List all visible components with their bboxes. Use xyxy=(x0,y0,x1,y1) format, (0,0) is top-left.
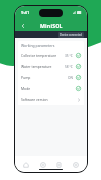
staticText: 35 °C xyxy=(65,54,73,58)
button[interactable]: Software version xyxy=(18,94,84,105)
staticText: Collector temperature xyxy=(21,53,65,58)
button[interactable]: Collector temperature xyxy=(18,50,84,61)
button[interactable]: Statistics xyxy=(37,159,49,171)
button[interactable]: Back xyxy=(18,21,27,30)
button[interactable]: Mode xyxy=(18,83,84,94)
staticText: Pump xyxy=(21,75,68,80)
staticText: Device connected xyxy=(60,33,82,37)
button[interactable]: Device xyxy=(53,159,65,171)
staticText: Working parameters xyxy=(21,43,55,48)
staticText: 58 °C xyxy=(65,65,73,69)
button[interactable]: Home xyxy=(20,159,32,171)
button[interactable]: Water temperature xyxy=(18,61,84,72)
button[interactable]: Settings xyxy=(70,159,82,171)
staticText: Software version xyxy=(21,97,77,102)
staticText: Water temperature xyxy=(21,64,65,69)
staticText: ON xyxy=(68,76,73,80)
staticText: MiniSOL xyxy=(40,22,63,29)
staticText: Mode xyxy=(21,86,76,91)
staticText: 9:41 xyxy=(21,10,30,16)
button[interactable]: Pump xyxy=(18,72,84,83)
button[interactable]: Device connected xyxy=(58,32,84,38)
